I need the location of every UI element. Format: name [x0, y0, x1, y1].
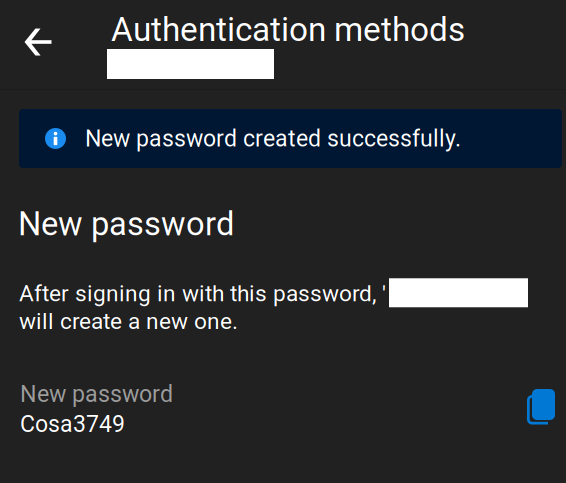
staticText: New password [20, 380, 173, 408]
staticText: Authentication methods [111, 10, 465, 49]
staticText: New password [18, 205, 234, 243]
staticText: New password created successfully. [85, 125, 461, 152]
staticText: Cosa3749 [20, 411, 125, 438]
staticText: After signing in with this password, ' [19, 280, 386, 307]
button[interactable]: Back [14, 18, 62, 66]
staticText: will create a new one. [19, 308, 238, 334]
button[interactable]: Copy password [518, 386, 564, 432]
